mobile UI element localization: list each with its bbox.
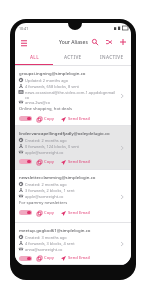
button[interactable]: ACTIVE — [53, 51, 92, 65]
staticText: meetup.gogkod61@simplelogin.co — [19, 227, 91, 233]
staticText: ALL — [30, 54, 39, 60]
staticText: Copy — [44, 159, 54, 165]
button[interactable]: linder.vancapellingedfjadly@oxleydelugio… — [15, 126, 131, 170]
staticText: Send Email — [68, 116, 90, 122]
staticText: groupxi.ingning@simplelogin.co — [19, 70, 86, 76]
staticText: Copy — [44, 255, 54, 261]
button[interactable]: Copy — [37, 115, 54, 123]
staticText: anna.2ws@co — [25, 100, 51, 105]
staticText: 4 forwards, 3 blocks, 4 sent — [25, 241, 75, 246]
staticText: apple@someeight.co — [25, 150, 64, 155]
staticText: 4 forwards, 658 blocks, 8 sent — [25, 84, 80, 89]
button[interactable]: Toggle alias — [19, 159, 32, 164]
staticText: Copy — [44, 116, 54, 122]
button[interactable]: Send Email — [61, 115, 90, 123]
button[interactable]: INACTIVE — [92, 51, 131, 65]
button[interactable]: Send Email — [61, 158, 90, 166]
button[interactable]: groupxi.ingning@simplelogin.co — [15, 66, 131, 126]
button[interactable]: Copy — [37, 254, 54, 262]
staticText: newsletter.clamming@simplelogin.co — [19, 174, 96, 180]
staticText: 3 forwards, 2 blocks, 1 sent — [25, 188, 75, 193]
button[interactable]: Toggle alias — [19, 116, 32, 121]
staticText: Online shopping, hot deals — [19, 106, 72, 112]
staticText: apple@someeight.co — [25, 194, 64, 199]
staticText: Send Email — [68, 255, 90, 261]
button[interactable]: Copy — [37, 158, 54, 166]
staticText: Copy — [44, 210, 54, 216]
button[interactable]: Toggle alias — [19, 256, 32, 261]
staticText: 0 forwards, 124 blocks, 0 sent — [25, 144, 80, 149]
button[interactable]: Search — [88, 35, 102, 49]
button[interactable]: meetup.gogkod61@simplelogin.co — [15, 223, 131, 265]
staticText: Your Aliases — [59, 39, 88, 46]
staticText: linder.vancapellingedfjadly@oxleydelugio… — [19, 130, 110, 136]
staticText: Send Email — [68, 159, 90, 165]
staticText: Created: 2 months ago — [25, 182, 67, 187]
button[interactable]: Copy — [37, 209, 54, 217]
staticText: Created: 2 months ago — [25, 138, 67, 143]
button[interactable]: Send Email — [61, 254, 90, 262]
staticText: anna@someeight.co — [25, 247, 63, 252]
staticText: news.occasional@the-video-com-1.appdxbgn… — [25, 90, 116, 95]
button[interactable]: Send Email — [61, 209, 90, 217]
staticText: ACTIVE — [64, 54, 82, 60]
button[interactable]: Toggle alias — [19, 210, 32, 215]
staticText: Updated: 2 months ago — [25, 78, 69, 83]
button[interactable]: newsletter.clamming@simplelogin.co — [15, 170, 131, 223]
staticText: For spammy newsletters — [19, 200, 68, 206]
button[interactable]: Sort — [102, 35, 116, 49]
button[interactable]: Add alias — [116, 35, 130, 49]
staticText: INACTIVE — [100, 54, 124, 60]
staticText: Created: 3 months ago — [25, 235, 67, 240]
button[interactable]: Menu — [17, 36, 30, 49]
button[interactable]: ALL — [15, 51, 53, 65]
staticText: Send Email — [68, 210, 90, 216]
staticText: 10:41 — [19, 26, 29, 31]
staticText: co — [25, 95, 30, 99]
